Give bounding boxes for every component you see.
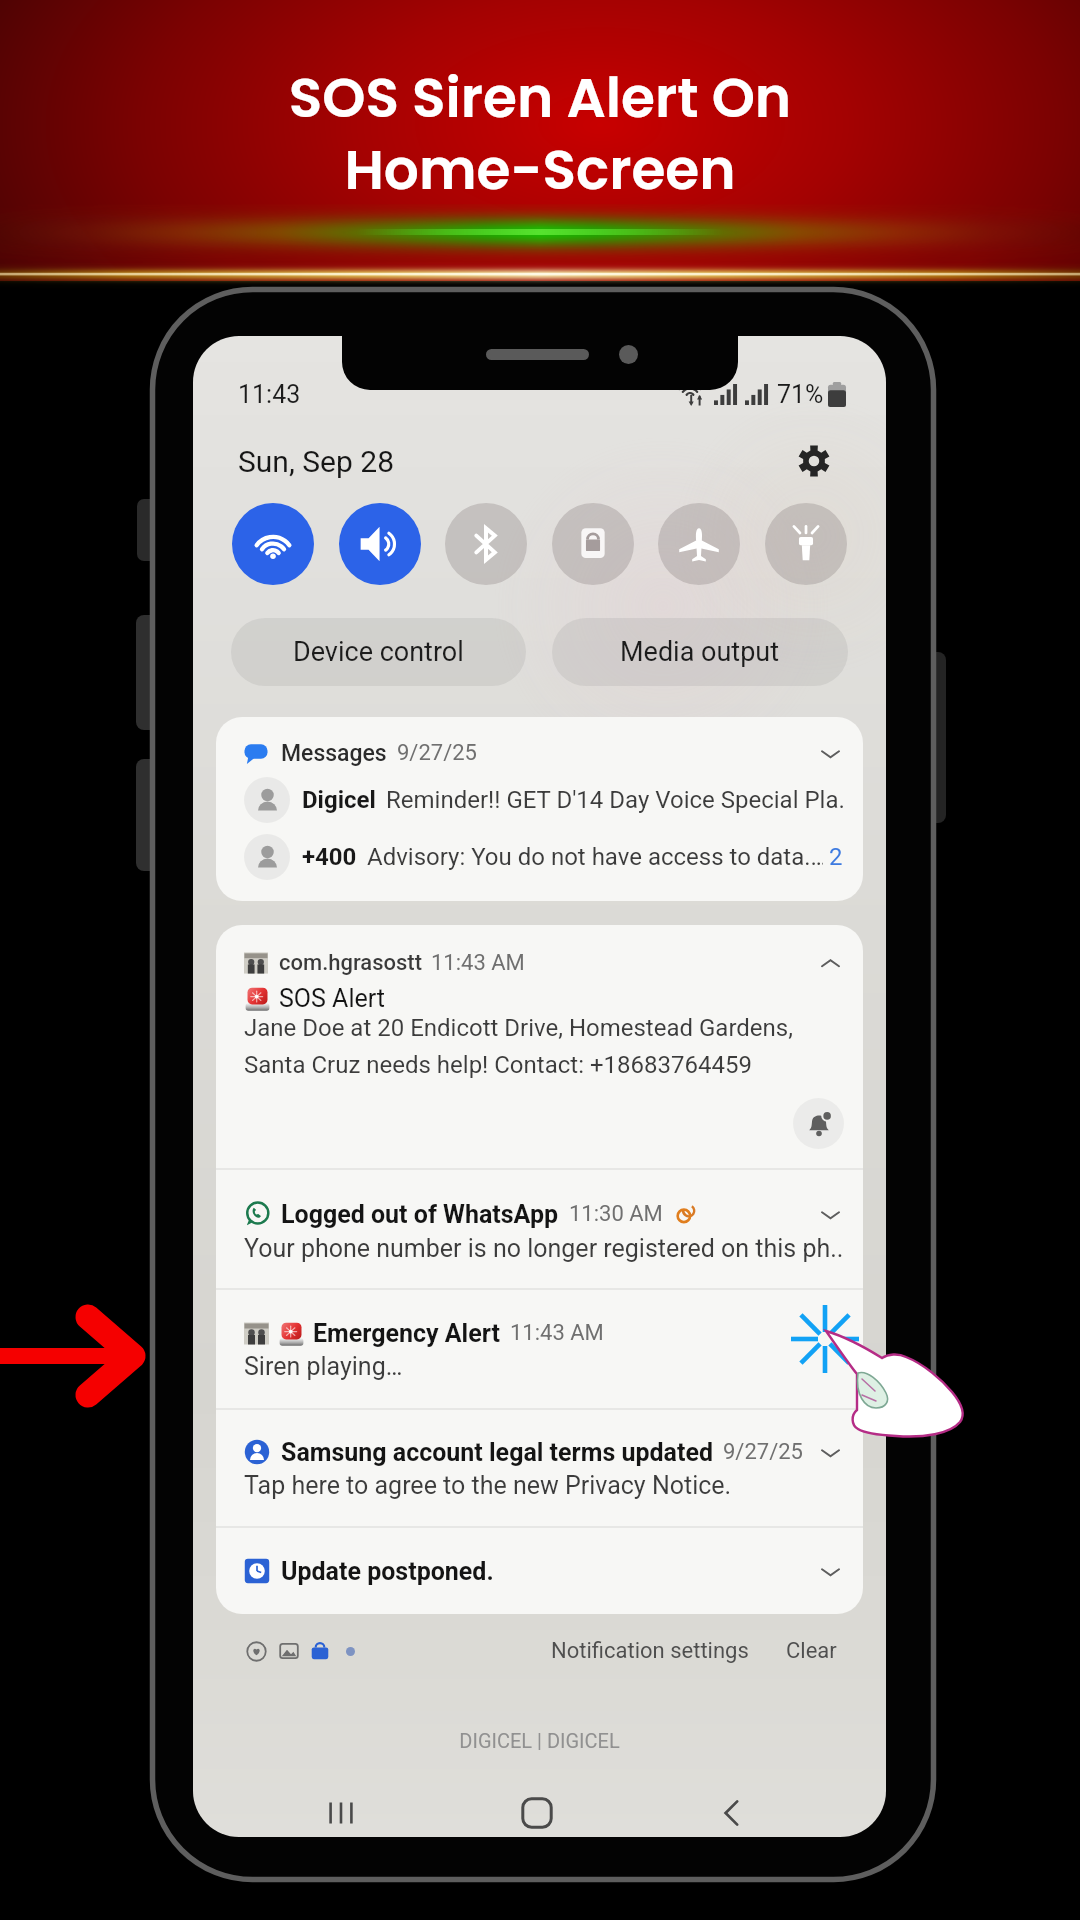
button[interactable]: Samsung account legal terms updated (216, 1410, 863, 1526)
staticText: 9/27/25 (723, 1439, 803, 1465)
button[interactable]: Bluetooth (445, 503, 527, 585)
staticText: 11:43 AM (431, 950, 525, 976)
staticText: Update postponed. (281, 1557, 494, 1586)
staticText: Sun, Sep 28 (238, 444, 394, 479)
staticText: 11:43 (238, 380, 301, 409)
staticText: Siren playing… (244, 1352, 403, 1381)
staticText: +400 (302, 843, 357, 871)
button[interactable]: Silence notification (793, 1098, 844, 1149)
button[interactable]: Clear (786, 1638, 837, 1664)
staticText: Jane Doe at 20 Endicott Drive, Homestead… (244, 1014, 793, 1078)
staticText: SOS Siren Alert On Home-Screen (0, 59, 1080, 208)
button[interactable]: Recent apps (311, 1785, 371, 1837)
staticText: Samsung account legal terms updated (281, 1438, 713, 1467)
staticText: DIGICEL | DIGICEL (193, 1729, 886, 1752)
button[interactable]: Back (702, 1785, 762, 1837)
staticText: Media output (620, 636, 780, 668)
staticText: Emergency Alert (313, 1319, 500, 1348)
button[interactable]: Notification settings (551, 1638, 749, 1664)
button[interactable]: Airplane mode (658, 503, 740, 585)
button[interactable]: Update postponed. (216, 1528, 863, 1614)
button[interactable]: Wi-Fi (232, 503, 314, 585)
staticText: Logged out of WhatsApp (281, 1200, 559, 1229)
staticText: Messages (281, 740, 387, 767)
staticText: com.hgrasostt (279, 950, 422, 976)
staticText: Tap here to agree to the new Privacy Not… (244, 1471, 732, 1500)
button[interactable]: Messages (216, 717, 863, 901)
button[interactable]: Emergency Alert (216, 1290, 863, 1408)
staticText: Reminder!! GET D'14 Day Voice Special Pl… (386, 786, 843, 814)
staticText: Advisory: You do not have access to data… (367, 843, 823, 871)
button[interactable]: com.hgrasostt (216, 925, 863, 1168)
staticText: 71% (777, 380, 824, 409)
staticText: Digicel (302, 786, 376, 814)
button[interactable]: Settings (792, 439, 836, 483)
button[interactable]: Flashlight (765, 503, 847, 585)
staticText: 9/27/25 (397, 740, 477, 766)
button[interactable]: Device control (231, 618, 526, 686)
staticText: Device control (293, 636, 464, 668)
staticText: 2 (829, 843, 843, 871)
button[interactable]: Home (507, 1785, 567, 1837)
button[interactable]: Logged out of WhatsApp (216, 1170, 863, 1288)
staticText: Your phone number is no longer registere… (244, 1234, 844, 1263)
button[interactable]: Media output (552, 618, 848, 686)
staticText: 11:30 AM (569, 1201, 663, 1227)
button[interactable]: SIM card (552, 503, 634, 585)
button[interactable]: Sound (339, 503, 421, 585)
staticText: 11:43 AM (510, 1320, 604, 1346)
staticText: SOS Alert (279, 984, 385, 1013)
